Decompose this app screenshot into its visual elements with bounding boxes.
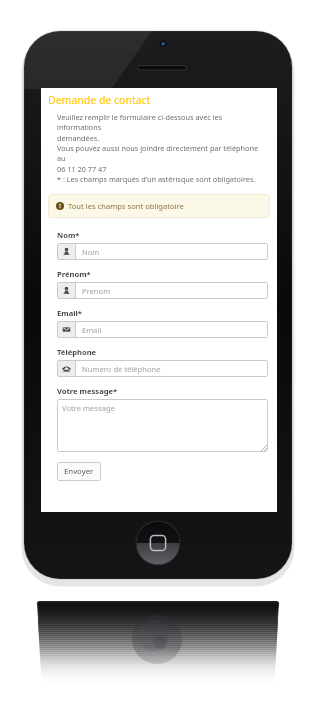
staticText: Nom* bbox=[57, 230, 80, 240]
staticText: Email* bbox=[57, 308, 82, 318]
staticText: Votre message* bbox=[57, 386, 118, 396]
staticText: Prénom* bbox=[57, 269, 91, 279]
staticText: Téléphone bbox=[57, 347, 97, 357]
staticText: * : Les champs marqués d'un astérisque s… bbox=[57, 174, 256, 184]
staticText: Tout les champs sont obligatoire bbox=[68, 201, 184, 211]
staticText: Numero de téléphone bbox=[82, 364, 161, 374]
button[interactable]: Prénom bbox=[57, 282, 268, 299]
staticText: Prenom bbox=[82, 286, 111, 296]
staticText: Demande de contact bbox=[48, 93, 151, 107]
staticText: Email bbox=[82, 325, 102, 335]
button[interactable]: Votre message bbox=[57, 399, 268, 452]
button[interactable]: Téléphone bbox=[57, 360, 268, 377]
button[interactable]: Envoyer bbox=[57, 462, 101, 481]
staticText: Nom bbox=[82, 247, 100, 257]
button[interactable]: Nom bbox=[57, 243, 268, 260]
staticText: Vous pouvez aussi nous joindre directeme… bbox=[57, 143, 268, 174]
staticText: Envoyer bbox=[64, 466, 94, 477]
staticText: Votre message bbox=[62, 403, 115, 413]
staticText: Veuillez remplir le formulaire ci-dessou… bbox=[57, 112, 268, 143]
button[interactable]: Email bbox=[57, 321, 268, 338]
